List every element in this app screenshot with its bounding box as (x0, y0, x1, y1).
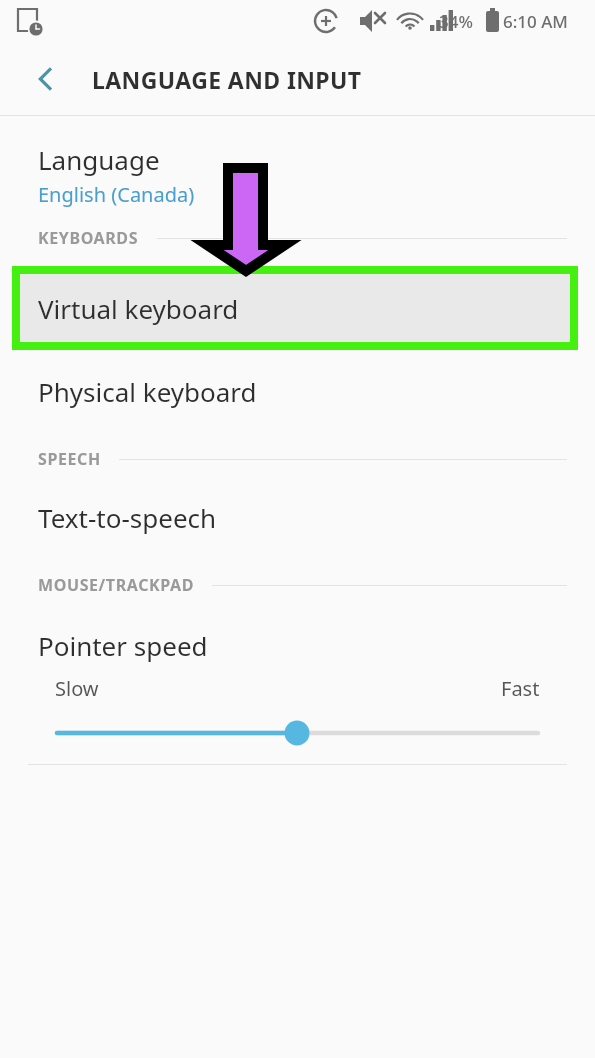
staticText: Physical keyboard (38, 374, 257, 409)
button[interactable]: Text-to-speech (0, 474, 595, 560)
staticText: Pointer speed (38, 628, 208, 663)
staticText: Text-to-speech (38, 500, 217, 535)
staticText: Language (38, 142, 160, 177)
staticText: KEYBOARDS (38, 227, 139, 249)
button[interactable]: Virtual keyboard (20, 274, 570, 342)
button[interactable]: Language (0, 116, 595, 227)
staticText: SPEECH (38, 448, 101, 470)
staticText: Fast (501, 675, 540, 702)
staticText: English (Canada) (38, 181, 195, 208)
staticText: 6:10 AM (503, 10, 568, 33)
staticText: 34% (439, 10, 473, 33)
staticText: LANGUAGE AND INPUT (92, 64, 362, 95)
button[interactable]: Back (22, 55, 70, 103)
staticText: MOUSE/TRACKPAD (38, 574, 194, 596)
staticText: Slow (55, 675, 99, 702)
button[interactable]: Physical keyboard (0, 350, 595, 432)
button[interactable]: Pointer speed (0, 600, 595, 764)
staticText: Virtual keyboard (38, 291, 239, 326)
